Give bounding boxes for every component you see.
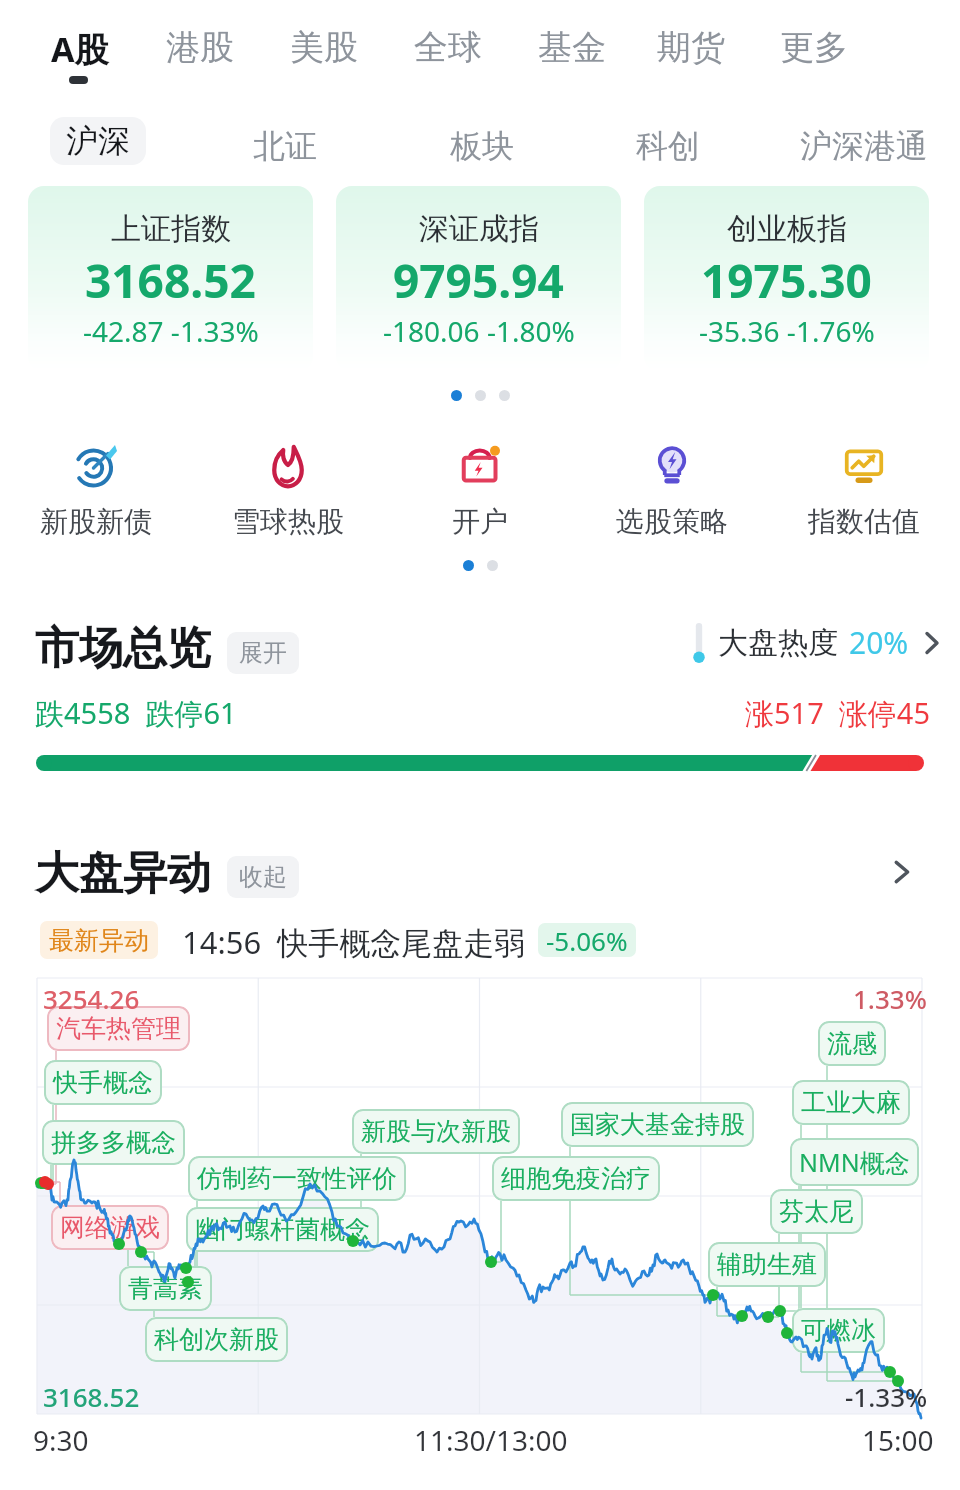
staticText: 港股 [166,26,234,69]
button[interactable]: 上证指数 [28,186,313,371]
button[interactable]: 大盘热度 [691,622,943,663]
staticText: 跌4558 跌停61 [35,693,237,733]
staticText: 芬太尼 [779,1196,854,1227]
staticText: 3168.52 [85,249,256,312]
staticText: 选股策略 [616,504,728,539]
button[interactable]: 新股新债 [0,435,192,539]
staticText: 3254.26 [43,981,140,1016]
staticText: 1.33% [853,981,927,1016]
staticText: 科创次新股 [154,1324,279,1355]
button[interactable]: 仿制药一致性评价 [188,1156,406,1201]
button[interactable]: 细胞免疫治疗 [492,1156,660,1201]
button[interactable]: 汽车热管理 [47,1006,190,1051]
staticText: 9:30 [33,1421,89,1459]
button[interactable]: 拼多多概念 [42,1120,185,1165]
button[interactable]: 国家大基金持股 [561,1102,754,1147]
staticText: 大盘热度 [718,624,838,662]
button[interactable]: 期货 [657,26,725,69]
staticText: 深证成指 [419,210,539,248]
button[interactable]: 基金 [538,26,606,69]
staticText: 网络游戏 [60,1212,160,1243]
button[interactable]: 沪深港通 [800,126,928,166]
staticText: 14:56 快手概念尾盘走弱 [182,921,526,959]
button[interactable]: 市场总览 [35,621,211,676]
staticText: 新股新债 [40,504,152,539]
staticText: 15:00 [862,1421,934,1459]
staticText: 基金 [538,26,606,69]
staticText: 科创 [636,126,700,166]
button[interactable]: 创业板指 [644,186,929,371]
staticText: 指数估值 [808,504,920,539]
button[interactable]: 工业大麻 [792,1080,910,1125]
button[interactable]: 展开 [227,632,299,674]
button[interactable]: 流感 [818,1021,886,1066]
staticText: 幽门螺杆菌概念 [195,1214,370,1245]
staticText: 9795.94 [393,249,564,312]
button[interactable]: 收起 [227,856,299,898]
staticText: 期货 [657,26,725,69]
button[interactable]: NMN概念 [790,1138,919,1186]
staticText: 仿制药一致性评价 [197,1163,397,1194]
button[interactable]: 全球 [414,26,482,69]
staticText: 汽车热管理 [56,1013,181,1044]
button[interactable]: 港股 [166,26,234,69]
staticText: 快手概念 [53,1067,153,1098]
staticText: 雪球热股 [232,504,344,539]
staticText: NMN概念 [799,1145,910,1179]
staticText: 最新异动 [49,925,149,956]
button[interactable]: 青蒿素 [119,1266,212,1311]
button[interactable]: A股 [51,26,109,72]
staticText: 创业板指 [727,210,847,248]
staticText: 流感 [827,1028,877,1059]
staticText: 细胞免疫治疗 [501,1163,651,1194]
staticText: 3168.52 [43,1379,140,1414]
button[interactable]: 幽门螺杆菌概念 [186,1207,379,1252]
button[interactable]: 指数估值 [768,435,960,539]
button[interactable]: 开户 [384,435,576,539]
button[interactable]: 更多 [780,26,848,69]
staticText: 拼多多概念 [51,1127,176,1158]
staticText: -5.06% [546,923,628,957]
staticText: 板块 [450,126,514,166]
button[interactable]: 深证成指 [336,186,621,371]
staticText: 全球 [414,26,482,69]
button[interactable]: 雪球热股 [192,435,384,539]
staticText: 更多 [780,26,848,69]
staticText: -180.06 -1.80% [383,312,575,350]
staticText: 新股与次新股 [361,1116,511,1147]
staticText: 大盘异动 [35,846,211,901]
staticText: 上证指数 [111,210,231,248]
staticText: 涨517 涨停45 [745,693,931,733]
button[interactable]: 新股与次新股 [352,1109,520,1154]
button[interactable]: 大盘异动 [35,846,211,901]
button[interactable]: 芬太尼 [770,1189,863,1234]
staticText: 20% [849,622,909,663]
button[interactable]: 选股策略 [576,435,768,539]
button[interactable]: 科创次新股 [145,1317,288,1362]
staticText: 开户 [452,504,508,539]
button[interactable]: 网络游戏 [51,1205,169,1250]
button[interactable]: 北证 [253,126,317,166]
staticText: 展开 [239,638,287,668]
staticText: 11:30/13:00 [414,1421,568,1459]
button[interactable]: 更多大盘异动 [890,852,916,892]
staticText: 工业大麻 [801,1087,901,1118]
staticText: -42.87 -1.33% [83,312,259,350]
button[interactable]: 辅助生殖 [708,1242,826,1287]
staticText: 辅助生殖 [717,1249,817,1280]
staticText: 市场总览 [35,621,211,676]
button[interactable]: 沪深 [50,117,146,165]
staticText: 1975.30 [701,249,872,312]
staticText: 收起 [239,862,287,892]
button[interactable]: 美股 [290,26,358,69]
staticText: 可燃冰 [801,1315,876,1346]
staticText: 沪深 [66,121,130,161]
staticText: 美股 [290,26,358,69]
button[interactable]: 板块 [450,126,514,166]
button[interactable]: 快手概念 [44,1060,162,1105]
staticText: 北证 [253,126,317,166]
staticText: -35.36 -1.76% [699,312,875,350]
staticText: 国家大基金持股 [570,1109,745,1140]
button[interactable]: 可燃冰 [792,1308,885,1353]
button[interactable]: 科创 [636,126,700,166]
